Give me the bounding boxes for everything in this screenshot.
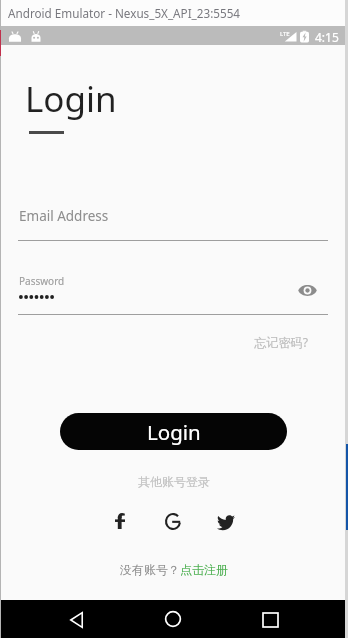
staticText: 其他账号登录 <box>0 474 348 489</box>
button[interactable]: Login <box>60 413 287 450</box>
button[interactable]: 忘记密码? <box>254 334 309 351</box>
button[interactable]: 没有账号？点击注册 <box>120 562 228 577</box>
button[interactable]: Back <box>58 602 94 638</box>
button[interactable]: Show password <box>296 279 318 301</box>
staticText: LTE <box>280 30 290 38</box>
staticText: 没有账号？点击注册 <box>120 562 228 577</box>
staticText: Login <box>147 418 201 446</box>
staticText: Android Emulator - Nexus_5X_API_23:5554 <box>8 5 241 21</box>
staticText: Password <box>19 274 65 288</box>
button[interactable]: Sign in with Google <box>158 506 188 536</box>
button[interactable]: Sign in with Twitter <box>211 509 241 539</box>
button[interactable]: Sign in with Facebook <box>105 506 135 536</box>
staticText: Login <box>25 75 117 123</box>
button[interactable]: Home <box>155 601 191 637</box>
staticText: 忘记密码? <box>254 334 309 351</box>
staticText: 4:15 <box>315 29 339 45</box>
staticText: Email Address <box>19 207 109 225</box>
button[interactable]: Recents <box>252 602 288 638</box>
